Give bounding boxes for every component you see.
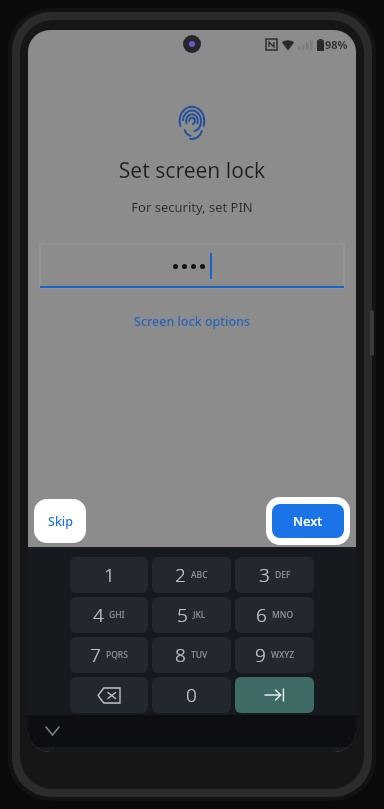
button[interactable]: 0 [152,677,231,713]
button[interactable]: 7 [70,637,148,673]
staticText: Next [293,512,323,530]
staticText: DEF [275,569,291,581]
button[interactable]: 6 [235,597,314,633]
staticText: 3 [259,562,270,588]
staticText: 5 [177,602,188,628]
button[interactable]: Hide keyboard [40,719,64,743]
button[interactable]: Next [266,497,350,545]
staticText: 8 [175,642,186,668]
staticText: 9 [255,642,266,668]
staticText: 7 [90,642,101,668]
staticText: For security, set PIN [28,198,356,216]
staticText: 2 [175,562,186,588]
button[interactable] [40,244,344,288]
button[interactable]: 8 [152,637,231,673]
staticText: PQRS [106,649,128,661]
button[interactable]: Enter [235,677,314,713]
button[interactable]: 5 [152,597,231,633]
button[interactable]: 9 [235,637,314,673]
button[interactable]: Screen lock options [126,310,258,333]
button[interactable]: 1 [70,557,148,593]
button[interactable]: 4 [70,597,148,633]
staticText: Screen lock options [134,313,250,330]
staticText: JKL [193,609,206,621]
button[interactable]: Delete [70,677,148,713]
staticText: 98% [325,37,348,52]
staticText: TUV [191,649,208,661]
staticText: MNO [272,609,294,621]
staticText: 0 [186,682,197,708]
staticText: ABC [191,569,208,581]
staticText: Set screen lock [28,156,356,185]
staticText: Skip [48,513,73,530]
staticText: WXYZ [271,649,295,661]
button[interactable]: 2 [152,557,231,593]
staticText: GHI [109,609,125,621]
staticText: 4 [93,602,104,628]
staticText: 6 [256,602,267,628]
staticText: 1 [104,562,115,588]
button[interactable]: 3 [235,557,314,593]
button[interactable]: Skip [34,499,86,543]
